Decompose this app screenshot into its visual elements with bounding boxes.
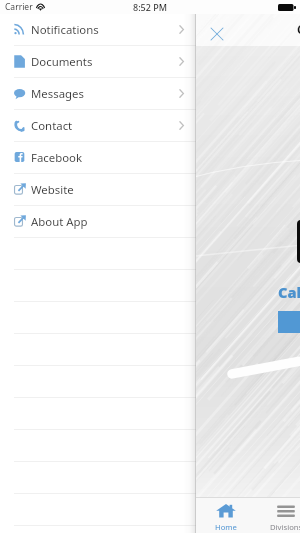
staticText: Cal [278, 282, 300, 302]
button[interactable]: Home [196, 497, 256, 533]
staticText: About App [31, 214, 88, 230]
staticText: Messages [31, 86, 84, 102]
staticText: 8:52 PM [133, 1, 167, 13]
button[interactable]: About App [0, 206, 196, 238]
staticText: Company Name [297, 22, 300, 38]
staticText: Contact [31, 118, 73, 134]
staticText: Documents [31, 54, 93, 70]
button[interactable]: Messages [0, 78, 196, 110]
button[interactable]: Divisions [256, 497, 300, 533]
staticText: Website [31, 182, 74, 198]
button[interactable]: Facebook [0, 142, 196, 174]
button[interactable]: Contact [0, 110, 196, 142]
button[interactable]: Close menu [205, 19, 227, 41]
staticText: Home [215, 522, 237, 532]
staticText: Facebook [31, 150, 83, 166]
staticText: Notifications [31, 22, 99, 38]
button[interactable]: Documents [0, 46, 196, 78]
staticText: Carrier [5, 1, 33, 13]
button[interactable]: Notifications [0, 14, 196, 46]
staticText: Divisions [270, 522, 300, 532]
button[interactable]: Website [0, 174, 196, 206]
